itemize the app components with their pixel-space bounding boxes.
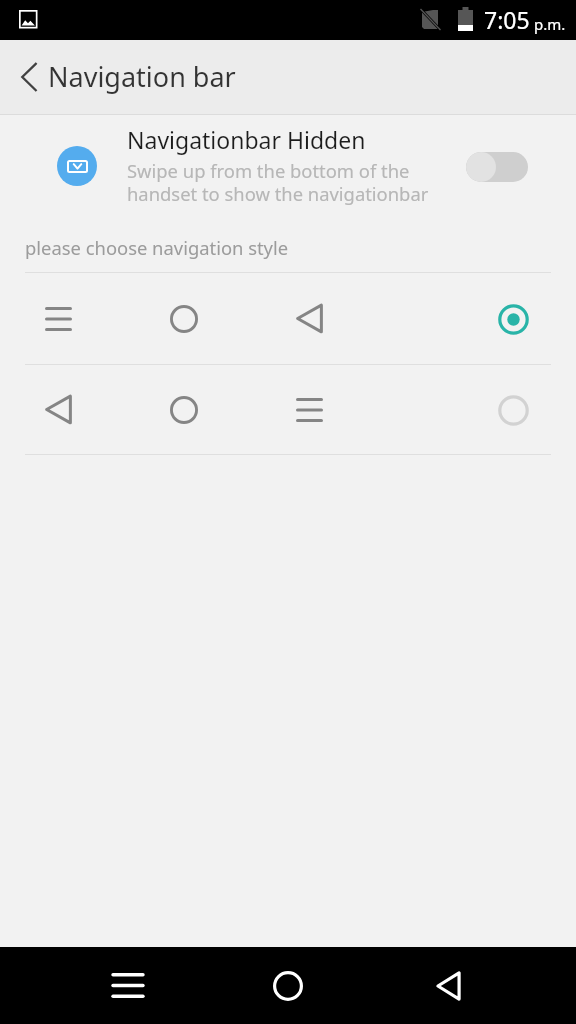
button[interactable]: Back	[408, 947, 488, 1024]
button[interactable]: Menu	[88, 947, 168, 1024]
button[interactable]: Navigation style option	[0, 273, 576, 364]
button[interactable]: Navigationbar Hidden	[0, 115, 576, 229]
button[interactable]: Navigation style option	[0, 365, 576, 454]
button[interactable]: Back	[0, 40, 48, 114]
button[interactable]: Select	[490, 387, 536, 433]
staticText: p.m.	[534, 14, 566, 34]
staticText: please choose navigation style	[25, 235, 289, 260]
staticText: Swipe up from the bottom of the handset …	[127, 158, 429, 206]
button[interactable]: Selected	[490, 296, 536, 342]
staticText: Navigationbar Hidden	[127, 124, 366, 155]
staticText: Navigation bar	[48, 58, 236, 95]
staticText: 7:05	[484, 4, 530, 35]
button[interactable]: Navigationbar Hidden toggle	[466, 152, 528, 182]
button[interactable]: Home	[248, 947, 328, 1024]
